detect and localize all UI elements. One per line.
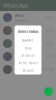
staticText: At the movies — [18, 61, 37, 65]
staticText: Select status — [17, 28, 38, 34]
staticText: Yesterday — [41, 68, 53, 71]
staticText: Alice — [15, 13, 24, 18]
staticText: 8:55 — [46, 42, 53, 45]
staticText: Hey there! — [15, 19, 29, 22]
staticText: Busy — [25, 46, 31, 50]
staticText: WhatsApp — [3, 2, 28, 9]
staticText: 9:12 — [46, 29, 53, 32]
staticText: At school — [21, 54, 34, 57]
staticText: Available — [22, 39, 34, 42]
staticText: Carol — [15, 39, 25, 44]
staticText: 9:41 — [46, 16, 53, 19]
staticText: 8:30 — [46, 55, 53, 58]
staticText: Dave — [15, 52, 24, 57]
staticText: See you soon — [15, 32, 34, 35]
staticText: Bob — [15, 26, 22, 31]
staticText: At work — [23, 69, 33, 72]
staticText: Call me — [15, 71, 25, 74]
